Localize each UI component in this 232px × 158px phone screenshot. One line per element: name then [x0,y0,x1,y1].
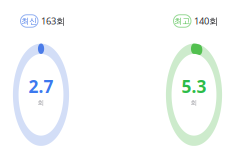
staticText: 최신 [21,16,37,26]
staticText: 140회 [194,15,218,27]
staticText: 최고 [174,16,190,26]
staticText: 회 [37,99,44,107]
staticText: 5.3 [181,75,206,98]
button[interactable]: 최고 [171,14,216,28]
staticText: 회 [190,99,197,107]
staticText: 2.7 [28,75,53,98]
staticText: 163회 [41,15,65,27]
button[interactable]: 최신 [18,14,63,28]
